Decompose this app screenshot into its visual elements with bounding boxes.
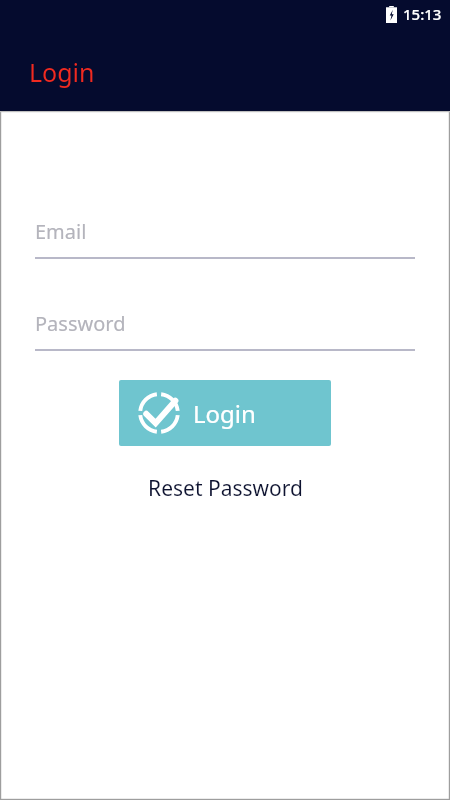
button[interactable]: Email (35, 218, 415, 259)
staticText: 15:13 (403, 4, 442, 24)
staticText: Login (29, 55, 95, 89)
button[interactable]: Password (35, 310, 415, 351)
staticText: Password (35, 310, 126, 337)
staticText: Email (35, 218, 87, 245)
button[interactable]: Reset Password (142, 470, 309, 507)
staticText: Login (193, 397, 256, 430)
button[interactable]: Login (119, 380, 331, 446)
